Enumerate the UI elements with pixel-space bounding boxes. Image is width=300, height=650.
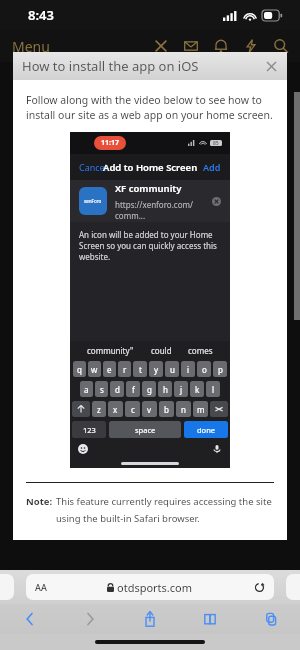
button[interactable]: Key — [72, 401, 90, 417]
staticText: o — [202, 364, 207, 375]
button[interactable]: w — [88, 361, 101, 377]
staticText: XF community — [115, 182, 182, 195]
staticText: w — [91, 364, 98, 375]
button[interactable]: Close — [152, 37, 170, 55]
button[interactable]: Key — [210, 401, 228, 417]
staticText: d — [115, 384, 120, 395]
staticText: https://xenforo.com/comm... — [115, 199, 212, 221]
button[interactable]: v — [142, 401, 157, 417]
button[interactable]: Forward — [60, 604, 120, 634]
staticText: 85 — [213, 140, 219, 146]
staticText: g — [147, 384, 152, 395]
button[interactable]: r — [118, 361, 131, 377]
staticText: AA — [35, 581, 47, 593]
button[interactable]: Tabs — [240, 604, 300, 634]
staticText: b — [164, 404, 169, 415]
staticText: This feature currently requires accessin… — [56, 495, 274, 524]
staticText: done — [197, 425, 216, 435]
staticText: Add to Home Screen — [103, 161, 198, 174]
staticText: 123 — [83, 425, 96, 435]
staticText: r — [123, 364, 127, 375]
button[interactable]: l — [206, 381, 220, 397]
button[interactable]: c — [125, 401, 140, 417]
staticText: community" — [87, 345, 134, 356]
staticText: space — [135, 425, 156, 435]
button[interactable]: Back — [0, 604, 60, 634]
button[interactable]: t — [133, 361, 147, 377]
button[interactable]: Dictation — [212, 444, 222, 454]
button[interactable]: 123 — [72, 421, 106, 438]
button[interactable]: x — [108, 401, 123, 417]
button[interactable]: Emoji — [78, 444, 88, 454]
staticText: u — [170, 364, 175, 375]
staticText: y — [154, 364, 159, 375]
button[interactable]: d — [110, 381, 124, 397]
staticText: n — [181, 404, 186, 415]
staticText: 8:43 — [28, 6, 54, 24]
staticText: An icon will be added to your Home Scree… — [79, 229, 218, 262]
staticText: j — [180, 384, 183, 395]
staticText: l — [212, 384, 215, 395]
button[interactable]: b — [159, 401, 174, 417]
button[interactable]: space — [109, 421, 181, 438]
staticText: x — [113, 404, 118, 415]
staticText: xenForo — [84, 198, 102, 204]
button[interactable]: Search — [272, 37, 290, 55]
staticText: t — [139, 364, 142, 375]
staticText: How to install the app on iOS — [22, 57, 199, 75]
staticText: f — [132, 384, 135, 395]
button[interactable]: Bookmarks — [180, 604, 240, 634]
button[interactable]: y — [149, 361, 163, 377]
staticText: Add — [203, 161, 221, 173]
button[interactable]: AA — [26, 574, 274, 600]
button[interactable]: Close dialog — [263, 58, 279, 74]
staticText: z — [97, 404, 101, 415]
button[interactable]: h — [158, 381, 172, 397]
staticText: m — [197, 404, 205, 415]
button[interactable]: Quick actions — [242, 37, 260, 55]
button[interactable]: Menu — [10, 33, 52, 60]
button[interactable]: k — [190, 381, 204, 397]
button[interactable]: u — [165, 361, 179, 377]
button[interactable]: Inbox — [182, 37, 200, 55]
button[interactable]: j — [174, 381, 188, 397]
button[interactable]: m — [193, 401, 208, 417]
staticText: i — [187, 364, 190, 375]
button[interactable]: Share — [120, 604, 180, 634]
button[interactable]: g — [142, 381, 156, 397]
staticText: Cancel — [79, 161, 108, 173]
staticText: Menu — [12, 37, 50, 56]
staticText: c — [131, 404, 135, 415]
button[interactable]: s — [95, 381, 108, 397]
staticText: s — [100, 384, 104, 395]
button[interactable]: done — [184, 421, 228, 438]
staticText: Note: — [26, 495, 53, 508]
button[interactable]: f — [126, 381, 140, 397]
button[interactable]: a — [80, 381, 93, 397]
staticText: k — [195, 384, 200, 395]
staticText: 11:17 — [101, 138, 119, 148]
button[interactable]: Alerts — [212, 37, 230, 55]
staticText: q — [77, 364, 82, 375]
staticText: could — [151, 345, 172, 356]
button[interactable]: n — [176, 401, 191, 417]
button[interactable]: Reload — [254, 582, 265, 593]
staticText: v — [147, 404, 152, 415]
staticText: h — [163, 384, 168, 395]
button[interactable]: z — [92, 401, 106, 417]
staticText: otdsports.com — [117, 580, 193, 595]
button[interactable]: i — [181, 361, 195, 377]
staticText: e — [107, 364, 112, 375]
staticText: Follow along with the video below to see… — [26, 93, 274, 122]
button[interactable]: q — [73, 361, 86, 377]
staticText: comes — [188, 345, 213, 356]
button[interactable]: o — [197, 361, 211, 377]
staticText: a — [84, 384, 89, 395]
button[interactable]: p — [213, 361, 227, 377]
button[interactable]: e — [103, 361, 116, 377]
staticText: p — [218, 364, 223, 375]
